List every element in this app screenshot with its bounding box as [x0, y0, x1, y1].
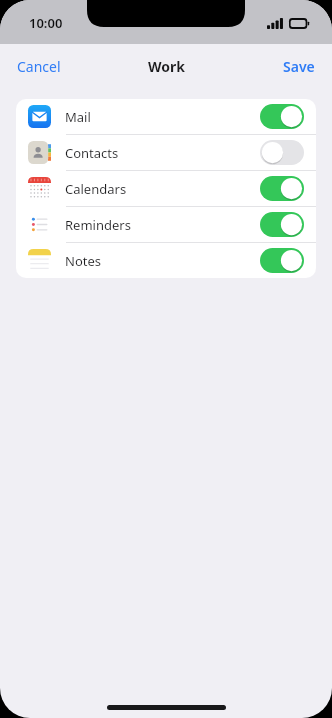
button[interactable]: Contacts: [16, 135, 316, 170]
staticText: Work: [148, 57, 185, 76]
staticText: Save: [283, 57, 315, 76]
button[interactable]: Toggle Reminders: [260, 212, 304, 237]
button[interactable]: Toggle Contacts: [260, 140, 304, 165]
staticText: Contacts: [65, 144, 260, 162]
button[interactable]: Calendars: [16, 171, 316, 206]
staticText: Calendars: [65, 180, 260, 198]
button[interactable]: Toggle Notes: [260, 248, 304, 273]
button[interactable]: Toggle Mail: [260, 104, 304, 129]
button[interactable]: Toggle Calendars: [260, 176, 304, 201]
button[interactable]: Mail: [16, 99, 316, 134]
staticText: Mail: [65, 108, 260, 126]
button[interactable]: Save: [266, 47, 332, 86]
button[interactable]: Cancel: [0, 47, 78, 86]
button[interactable]: Notes: [16, 243, 316, 278]
staticText: Reminders: [65, 216, 260, 234]
staticText: Notes: [65, 252, 260, 270]
staticText: 10:00: [29, 14, 63, 32]
staticText: Cancel: [17, 57, 61, 76]
button[interactable]: Reminders: [16, 207, 316, 242]
